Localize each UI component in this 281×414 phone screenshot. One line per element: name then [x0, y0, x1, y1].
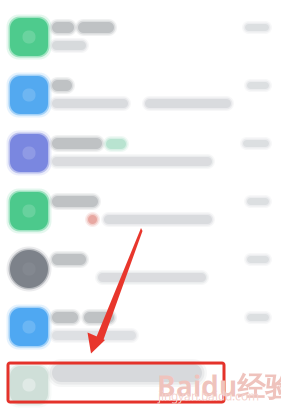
button[interactable]	[0, 356, 281, 414]
button[interactable]	[0, 182, 281, 240]
staticText: Baidu经验	[157, 367, 281, 404]
staticText: jingyan.baidu.com	[158, 388, 259, 404]
button[interactable]	[0, 66, 281, 124]
button[interactable]	[0, 298, 281, 356]
button[interactable]	[0, 124, 281, 182]
button[interactable]	[0, 240, 281, 298]
button[interactable]	[0, 8, 281, 66]
